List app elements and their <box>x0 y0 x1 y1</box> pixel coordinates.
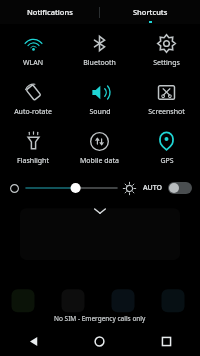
staticText: WLAN <box>23 58 43 68</box>
other: Maximum brightness <box>123 182 136 195</box>
button[interactable]: Back <box>0 326 66 356</box>
staticText: Mobile data <box>80 156 119 166</box>
button[interactable]: Mobile data <box>66 128 133 169</box>
button[interactable]: Recent apps <box>133 326 200 356</box>
button[interactable]: GPS <box>133 128 200 169</box>
button[interactable]: Flashlight <box>0 128 66 169</box>
staticText: GPS <box>160 156 174 166</box>
staticText: Shortcuts <box>133 7 168 17</box>
staticText: Sound <box>89 107 111 117</box>
button[interactable]: Notifications <box>0 0 100 24</box>
button[interactable]: Screenshot <box>133 79 200 120</box>
button[interactable]: Home <box>66 326 133 356</box>
button[interactable]: Sound <box>66 79 133 120</box>
staticText: Bluetooth <box>83 58 116 68</box>
staticText: Screenshot <box>148 107 185 117</box>
button[interactable]: Auto-rotate <box>0 79 66 120</box>
staticText: Settings <box>153 58 180 68</box>
button[interactable]: Bluetooth <box>66 30 133 71</box>
staticText: Notifications <box>27 7 73 17</box>
button[interactable]: Brightness slider <box>26 179 117 197</box>
button[interactable]: Auto brightness toggle <box>168 182 192 194</box>
staticText: AUTO <box>143 183 163 193</box>
button[interactable]: Shortcuts <box>100 0 200 24</box>
button[interactable]: Settings <box>133 30 200 71</box>
staticText: Auto-rotate <box>14 107 52 117</box>
button[interactable]: Collapse quick settings <box>0 202 200 220</box>
staticText: Flashlight <box>17 156 49 166</box>
staticText: No SIM - Emergency calls only <box>54 314 146 323</box>
button[interactable]: WLAN <box>0 30 66 71</box>
other: Minimum brightness <box>8 182 21 195</box>
